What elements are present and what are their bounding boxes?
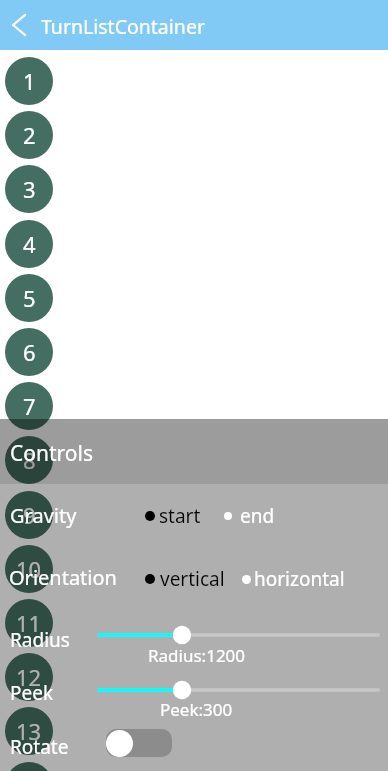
staticText: 9 bbox=[23, 500, 36, 530]
staticText: 2 bbox=[23, 120, 36, 150]
button[interactable]: 6 bbox=[5, 328, 53, 376]
button[interactable]: Back bbox=[0, 6, 38, 44]
button[interactable]: vertical bbox=[145, 566, 225, 592]
button[interactable]: horizontal bbox=[242, 566, 345, 592]
staticText: TurnListContainer bbox=[41, 13, 205, 40]
staticText: 12 bbox=[16, 662, 42, 692]
staticText: Gravity bbox=[10, 502, 77, 529]
staticText: 5 bbox=[23, 283, 36, 313]
button[interactable]: end bbox=[224, 503, 275, 529]
button[interactable]: 11 bbox=[5, 599, 53, 647]
staticText: horizontal bbox=[254, 566, 345, 592]
staticText: Radius bbox=[10, 627, 70, 653]
staticText: 10 bbox=[16, 554, 42, 584]
button[interactable]: 5 bbox=[5, 274, 53, 322]
button[interactable]: 7 bbox=[5, 382, 53, 430]
button[interactable]: 10 bbox=[5, 545, 53, 593]
staticText: 1 bbox=[23, 66, 36, 96]
button[interactable]: Slider bbox=[88, 622, 388, 648]
button[interactable]: 3 bbox=[5, 165, 53, 213]
staticText: Peek:300 bbox=[160, 698, 233, 721]
button[interactable]: 1 bbox=[5, 57, 53, 105]
button[interactable]: 8 bbox=[5, 436, 53, 484]
staticText: end bbox=[240, 503, 275, 529]
staticText: Radius:1200 bbox=[148, 644, 246, 667]
staticText: Controls bbox=[10, 439, 93, 468]
staticText: 13 bbox=[16, 716, 42, 746]
staticText: 3 bbox=[23, 174, 36, 204]
staticText: Orientation bbox=[9, 564, 117, 591]
staticText: 7 bbox=[23, 391, 36, 421]
button[interactable]: 12 bbox=[5, 653, 53, 701]
staticText: 4 bbox=[23, 229, 36, 259]
staticText: start bbox=[159, 503, 201, 529]
staticText: Peek bbox=[10, 680, 54, 706]
staticText: vertical bbox=[160, 566, 225, 592]
button[interactable]: 2 bbox=[5, 111, 53, 159]
staticText: 6 bbox=[23, 337, 36, 367]
staticText: 11 bbox=[16, 608, 42, 638]
button[interactable]: 9 bbox=[5, 491, 53, 539]
button[interactable]: 4 bbox=[5, 220, 53, 268]
staticText: 8 bbox=[23, 445, 36, 475]
button[interactable]: start bbox=[145, 503, 201, 529]
button[interactable]: Slider bbox=[88, 677, 388, 703]
button[interactable]: 13 bbox=[5, 707, 53, 755]
staticText: Rotate bbox=[10, 734, 69, 760]
button[interactable]: Rotate toggle bbox=[106, 729, 172, 757]
button[interactable]: 14 bbox=[5, 762, 53, 771]
